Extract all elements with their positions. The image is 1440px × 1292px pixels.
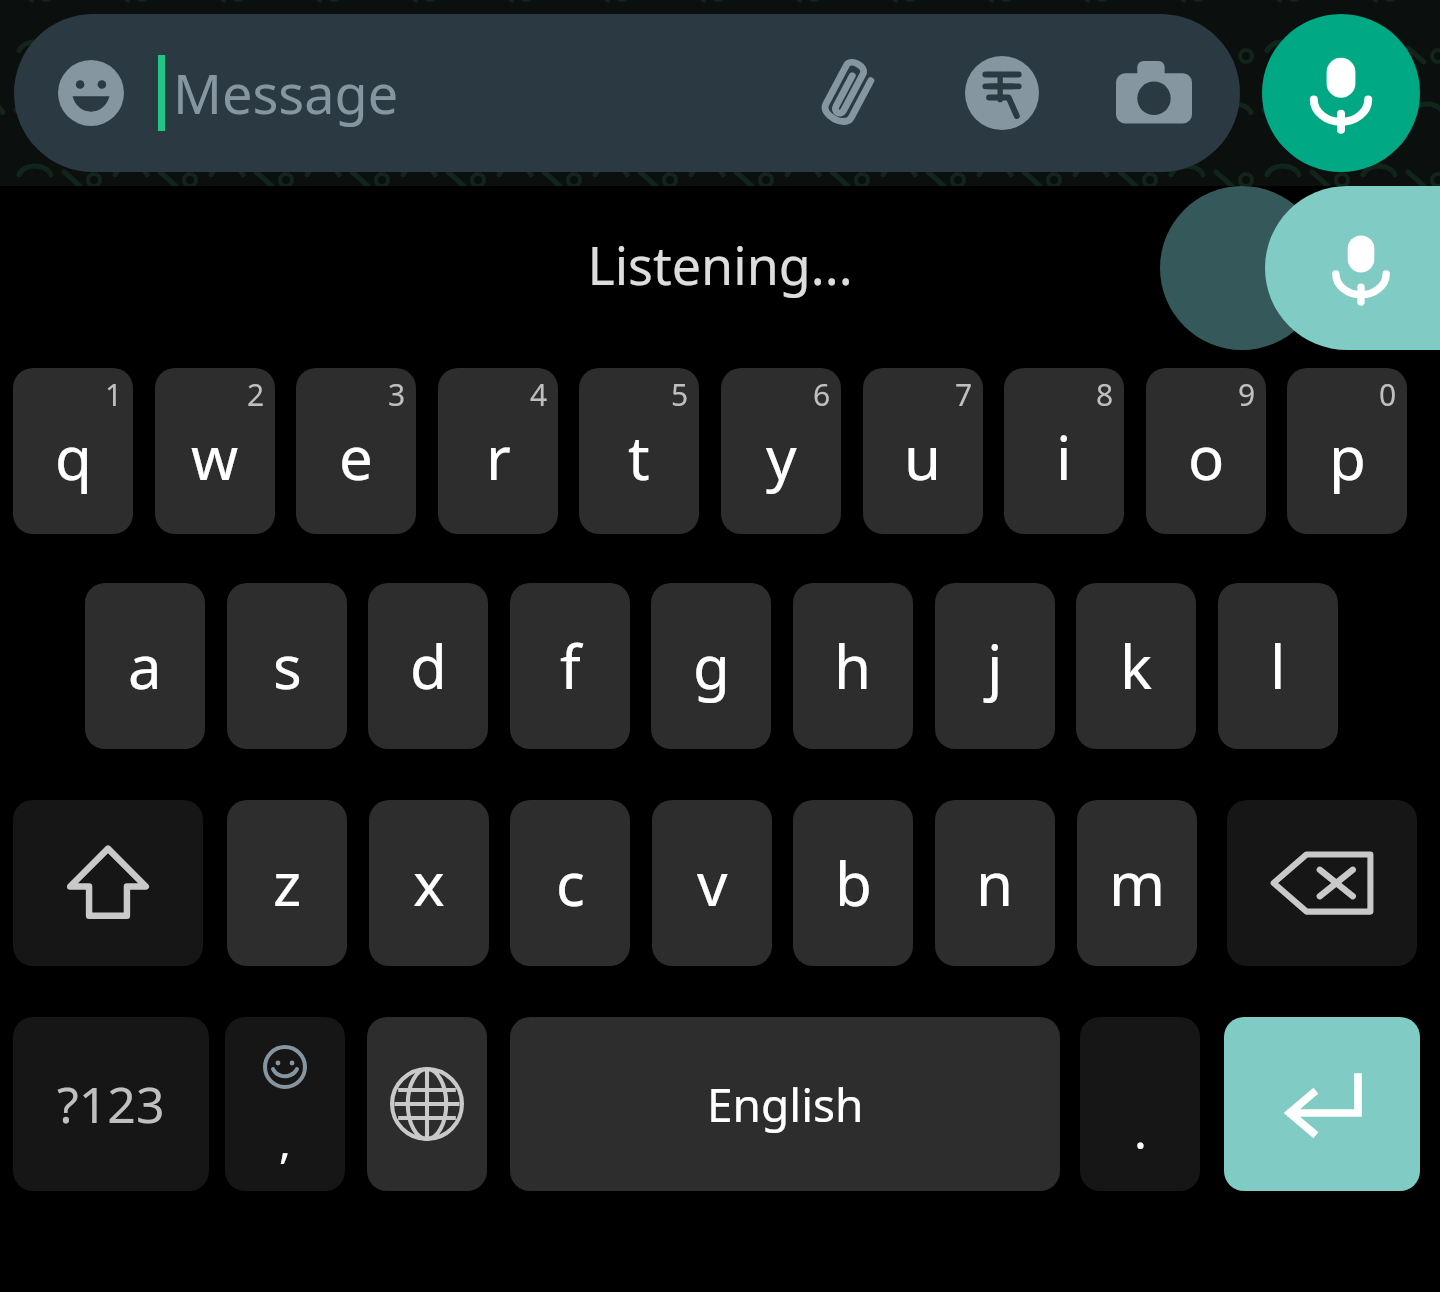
staticText: o [1188, 416, 1225, 498]
staticText: 9 [1238, 374, 1256, 415]
button[interactable]: Shift [13, 800, 203, 966]
button[interactable]: o [1146, 368, 1266, 534]
button[interactable]: v [652, 800, 772, 966]
staticText: c [556, 842, 585, 924]
staticText: n [976, 842, 1014, 924]
staticText: Listening... [587, 229, 853, 300]
button[interactable]: Stop listening [1265, 186, 1440, 350]
staticText: g [693, 625, 730, 707]
staticText: f [560, 625, 581, 707]
staticText: r [486, 416, 511, 498]
button[interactable]: Emoji [14, 14, 1240, 172]
button[interactable]: r [438, 368, 558, 534]
staticText: h [834, 625, 872, 707]
button[interactable]: p [1287, 368, 1407, 534]
staticText: 1 [105, 374, 123, 415]
staticText: e [339, 416, 373, 498]
button[interactable]: j [935, 583, 1055, 749]
staticText: 3 [388, 374, 406, 415]
button[interactable]: u [863, 368, 983, 534]
button[interactable]: Payment [954, 45, 1050, 141]
button[interactable]: Backspace [1227, 800, 1417, 966]
button[interactable]: x [369, 800, 489, 966]
staticText: p [1329, 416, 1366, 498]
button[interactable]: d [368, 583, 488, 749]
staticText: 0 [1379, 374, 1397, 415]
button[interactable]: a [85, 583, 205, 749]
button[interactable]: f [510, 583, 630, 749]
staticText: . [1134, 1098, 1147, 1163]
button[interactable]: . [1080, 1017, 1200, 1191]
staticText: Message [173, 56, 399, 130]
staticText: 5 [671, 374, 689, 415]
button[interactable]: Emoji and comma [225, 1017, 345, 1191]
staticText: v [697, 842, 728, 924]
staticText: z [273, 842, 302, 924]
staticText: l [1270, 625, 1286, 707]
staticText: t [628, 416, 650, 498]
staticText: q [55, 416, 92, 498]
staticText: b [835, 842, 872, 924]
staticText: 2 [247, 374, 265, 415]
staticText: i [1056, 416, 1072, 498]
button[interactable]: s [227, 583, 347, 749]
staticText: w [191, 416, 239, 498]
button[interactable]: t [579, 368, 699, 534]
button[interactable]: Change language [367, 1017, 487, 1191]
staticText: d [410, 625, 447, 707]
button[interactable]: e [296, 368, 416, 534]
staticText: English [707, 1073, 864, 1136]
staticText: k [1120, 625, 1153, 707]
button[interactable]: Enter [1224, 1017, 1420, 1191]
button[interactable]: k [1076, 583, 1196, 749]
staticText: u [904, 416, 942, 498]
staticText: j [987, 625, 1003, 707]
staticText: m [1109, 842, 1166, 924]
button[interactable]: g [651, 583, 771, 749]
staticText: 7 [955, 374, 973, 415]
staticText: a [128, 625, 162, 707]
button[interactable]: i [1004, 368, 1124, 534]
staticText: ?123 [57, 1070, 165, 1138]
button[interactable]: b [793, 800, 913, 966]
button[interactable]: Attach [800, 45, 896, 141]
button[interactable]: l [1218, 583, 1338, 749]
button[interactable]: c [510, 800, 630, 966]
button[interactable]: ?123 [13, 1017, 209, 1191]
staticText: 6 [813, 374, 831, 415]
staticText: 4 [530, 374, 548, 415]
button[interactable]: m [1077, 800, 1197, 966]
staticText: , [279, 1111, 291, 1171]
staticText: x [413, 842, 445, 924]
button[interactable]: n [935, 800, 1055, 966]
button[interactable]: q [13, 368, 133, 534]
button[interactable]: y [721, 368, 841, 534]
button[interactable]: Voice message [1262, 14, 1420, 172]
button[interactable]: Camera [1106, 45, 1202, 141]
button[interactable]: h [793, 583, 913, 749]
staticText: y [766, 416, 797, 498]
staticText: s [273, 625, 302, 707]
button[interactable]: Emoji [54, 56, 128, 130]
button[interactable]: w [155, 368, 275, 534]
staticText: 8 [1096, 374, 1114, 415]
button[interactable]: z [227, 800, 347, 966]
button[interactable]: English [510, 1017, 1060, 1191]
